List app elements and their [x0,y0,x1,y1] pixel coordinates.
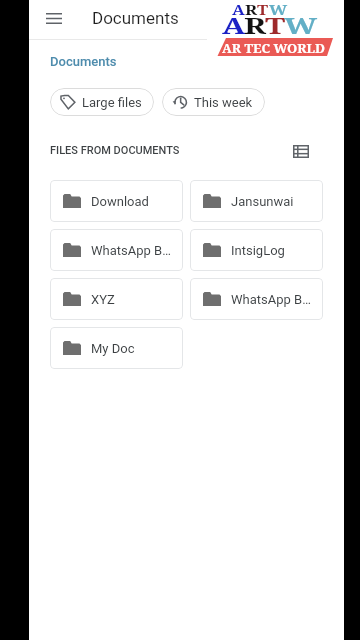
staticText: T [257,1,269,19]
staticText: T [265,10,286,40]
staticText: AR TEC WORLD [222,39,326,57]
staticText: R [244,10,267,40]
staticText: This week [194,95,253,110]
button[interactable]: WhatsApp Business [190,278,323,320]
button[interactable]: My Doc [50,327,183,369]
button[interactable]: IntsigLog [190,229,323,271]
button[interactable]: This week [162,88,265,116]
staticText: IntsigLog [231,243,285,258]
staticText: My Doc [91,341,135,356]
staticText: XYZ [91,292,115,307]
button[interactable]: Jansunwai [190,180,323,222]
staticText: WhatsApp Business [231,292,315,307]
button[interactable]: Download [50,180,183,222]
staticText: W [284,10,318,40]
staticText: WhatsApp Business [91,243,175,258]
button[interactable]: XYZ [50,278,183,320]
staticText: Documents [92,8,179,28]
staticText: Large files [82,95,142,110]
staticText: Documents [50,54,117,69]
button[interactable]: WhatsApp Business [50,229,183,271]
staticText: Download [91,194,149,209]
staticText: A [232,1,245,19]
button[interactable]: Menu [39,3,69,33]
staticText: R [245,1,258,19]
staticText: W [269,1,288,19]
staticText: A [222,10,246,40]
staticText: FILES FROM DOCUMENTS [50,144,180,157]
button[interactable]: Large files [50,88,154,116]
button[interactable]: List view [289,139,313,163]
button[interactable]: Documents [50,52,117,71]
staticText: Jansunwai [231,194,294,209]
